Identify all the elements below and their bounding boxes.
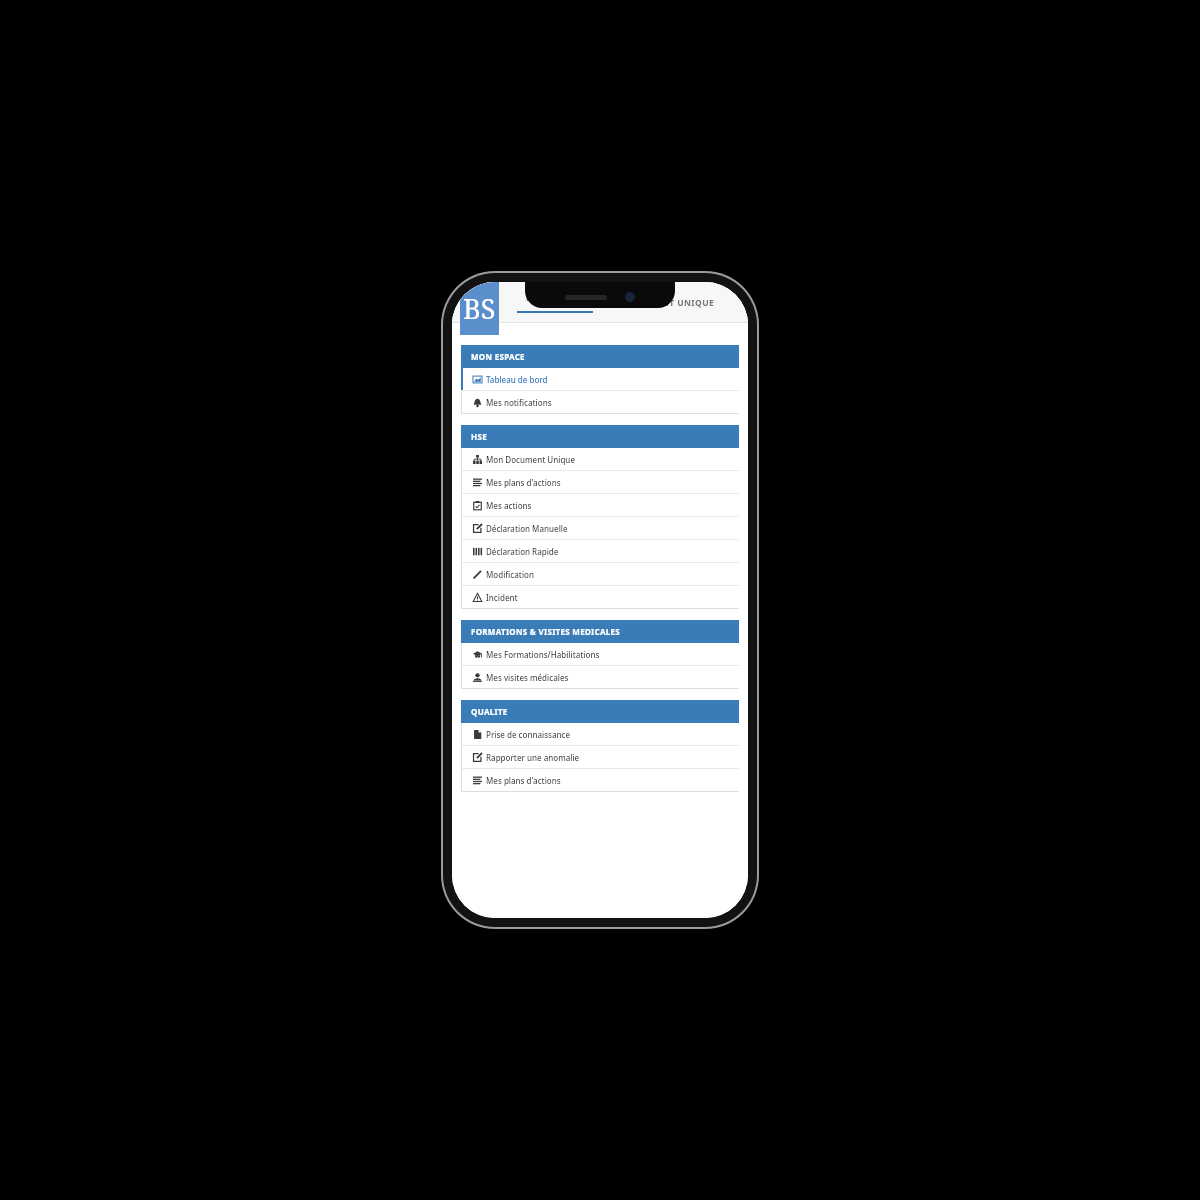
staticText: DOCUMENT UNIQUE <box>622 297 715 309</box>
staticText: MON ESPACE <box>471 351 525 362</box>
button[interactable]: Mes visites médicales <box>461 666 739 688</box>
staticText: Modification <box>486 569 534 580</box>
button[interactable]: Mes Formations/Habilitations <box>461 643 739 665</box>
button[interactable]: Mes notifications <box>461 391 739 413</box>
staticText: Mon Document Unique <box>486 454 575 465</box>
button[interactable]: Déclaration Manuelle <box>461 517 739 539</box>
staticText: Mes visites médicales <box>486 672 569 683</box>
button[interactable]: Tableau de bord <box>461 368 739 390</box>
button[interactable]: BS logo <box>460 282 499 335</box>
staticText: Déclaration Manuelle <box>486 523 568 534</box>
button[interactable]: MON ESPACE <box>508 292 602 313</box>
staticText: Mes Formations/Habilitations <box>486 649 600 660</box>
staticText: HSE <box>471 431 487 442</box>
button[interactable]: Mes plans d'actions <box>461 471 739 493</box>
staticText: Mes plans d'actions <box>486 477 561 488</box>
button[interactable]: Mes plans d'actions <box>461 769 739 791</box>
button[interactable]: Déclaration Rapide <box>461 540 739 562</box>
button[interactable]: Prise de connaissance <box>461 723 739 745</box>
staticText: Mes plans d'actions <box>486 775 561 786</box>
staticText: Prise de connaissance <box>486 729 571 740</box>
staticText: Déclaration Rapide <box>486 546 559 557</box>
staticText: Mes actions <box>486 500 532 511</box>
button[interactable]: Mes actions <box>461 494 739 516</box>
button[interactable]: Modification <box>461 563 739 585</box>
staticText: Mes notifications <box>486 397 552 408</box>
button[interactable]: Rapporter une anomalie <box>461 746 739 768</box>
button[interactable]: Mon Document Unique <box>461 448 739 470</box>
staticText: MON ESPACE <box>526 292 585 304</box>
button[interactable]: Incident <box>461 586 739 608</box>
button[interactable]: DOCUMENT UNIQUE <box>613 291 724 315</box>
staticText: Tableau de bord <box>486 374 548 385</box>
staticText: BS <box>463 290 496 327</box>
staticText: Incident <box>486 592 518 603</box>
staticText: Rapporter une anomalie <box>486 752 580 763</box>
staticText: FORMATIONS & VISITES MEDICALES <box>471 626 621 637</box>
staticText: QUALITE <box>471 706 508 717</box>
